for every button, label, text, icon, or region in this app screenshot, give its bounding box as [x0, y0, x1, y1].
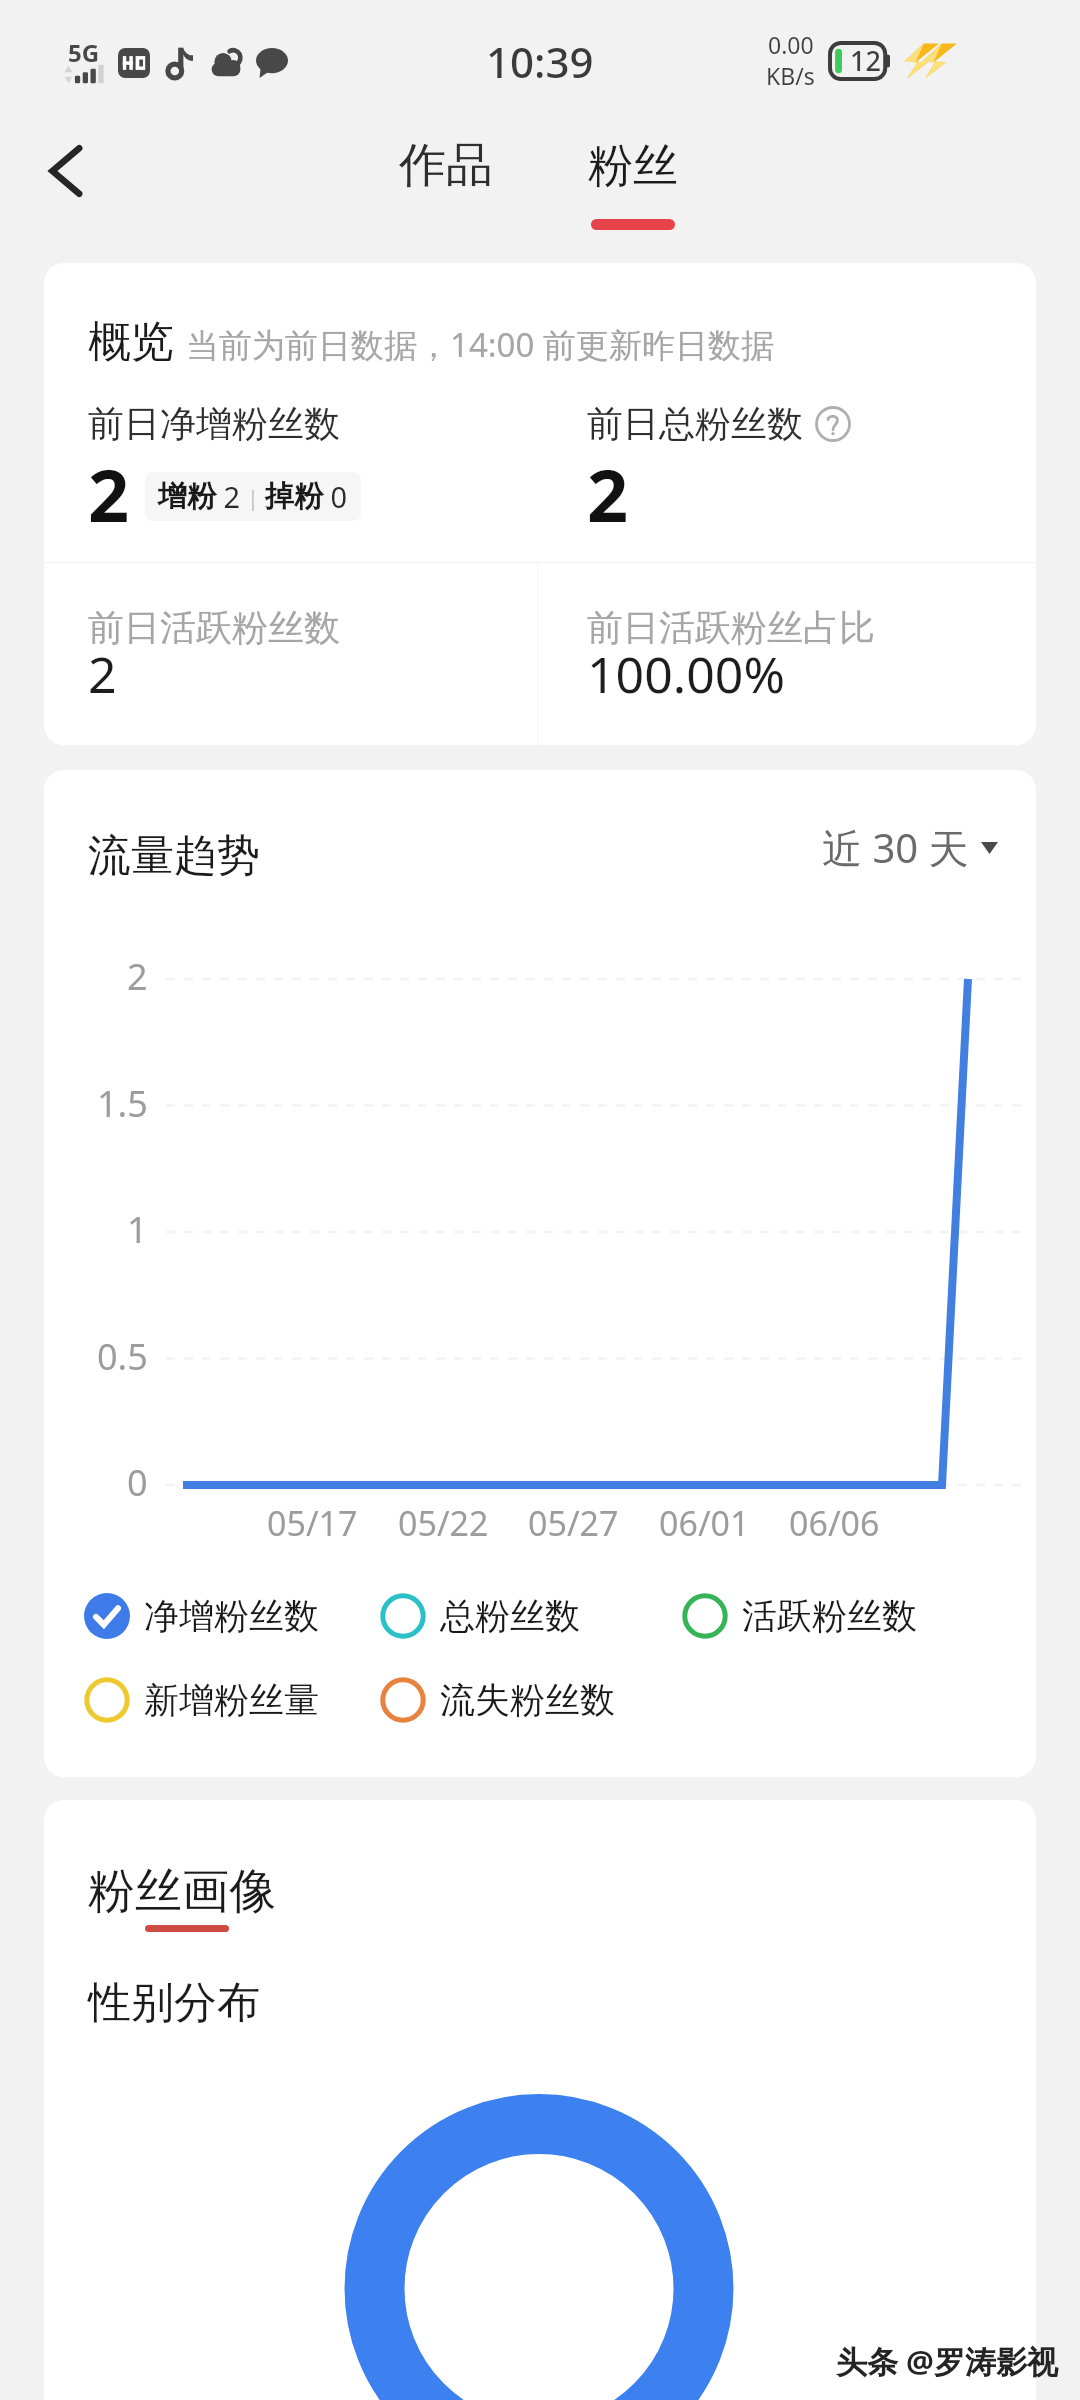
- staticText: 当前为前日数据，14:00 前更新昨日数据: [186, 322, 774, 367]
- staticText: 性别分布: [88, 1976, 260, 2030]
- staticText: 10:39: [486, 33, 594, 90]
- staticText: 头条 @罗涛影视: [836, 2340, 1058, 2382]
- staticText: 流失粉丝数: [440, 1678, 615, 1722]
- button[interactable]: 活跃粉丝数: [682, 1593, 917, 1639]
- staticText: 0.5: [97, 1332, 148, 1381]
- staticText: 净增粉丝数: [144, 1594, 319, 1638]
- staticText: 0: [323, 477, 348, 516]
- staticText: 流量趋势: [88, 829, 260, 883]
- staticText: 1: [127, 1205, 148, 1254]
- staticText: 0.00: [768, 29, 814, 60]
- button[interactable]: 总粉丝数: [380, 1593, 580, 1639]
- button[interactable]: 新增粉丝量: [84, 1677, 319, 1723]
- staticText: 活跃粉丝数: [742, 1594, 917, 1638]
- staticText: 2: [587, 445, 629, 543]
- staticText: 前日总粉丝数: [587, 401, 803, 446]
- staticText: 增粉: [158, 478, 216, 515]
- button[interactable]: 净增粉丝数: [84, 1593, 319, 1639]
- staticText: 近 30 天: [822, 820, 969, 875]
- staticText: 1.5: [97, 1079, 148, 1128]
- staticText: 12: [850, 42, 881, 79]
- staticText: 06/01: [659, 1500, 750, 1546]
- staticText: 前日活跃粉丝数: [88, 605, 340, 650]
- staticText: 05/17: [267, 1500, 358, 1546]
- staticText: 05/22: [398, 1500, 489, 1546]
- staticText: 总粉丝数: [440, 1594, 580, 1638]
- staticText: 2: [88, 640, 117, 708]
- staticText: 粉丝画像: [88, 1862, 276, 1921]
- button[interactable]: 作品: [356, 136, 536, 232]
- staticText: |: [241, 482, 265, 512]
- staticText: 06/06: [789, 1500, 880, 1546]
- staticText: 0: [127, 1458, 148, 1507]
- button[interactable]: 近 30 天: [822, 820, 998, 875]
- staticText: 掉粉: [265, 478, 323, 515]
- staticText: 2: [88, 445, 130, 543]
- staticText: KB/s: [766, 60, 815, 91]
- staticText: 5G: [68, 36, 100, 69]
- button[interactable]: 粉丝: [543, 138, 723, 258]
- staticText: 前日净增粉丝数: [88, 401, 340, 446]
- staticText: 2: [216, 477, 241, 516]
- button[interactable]: What is total fans: [815, 406, 851, 442]
- staticText: 作品: [399, 136, 493, 195]
- staticText: 100.00%: [587, 640, 785, 708]
- button[interactable]: Back: [32, 131, 112, 211]
- button[interactable]: 流失粉丝数: [380, 1677, 615, 1723]
- staticText: 新增粉丝量: [144, 1678, 319, 1722]
- staticText: 2: [127, 952, 148, 1001]
- staticText: 概览: [88, 315, 174, 369]
- staticText: 前日活跃粉丝占比: [587, 605, 875, 650]
- staticText: 05/27: [528, 1500, 619, 1546]
- staticText: 粉丝: [588, 138, 678, 195]
